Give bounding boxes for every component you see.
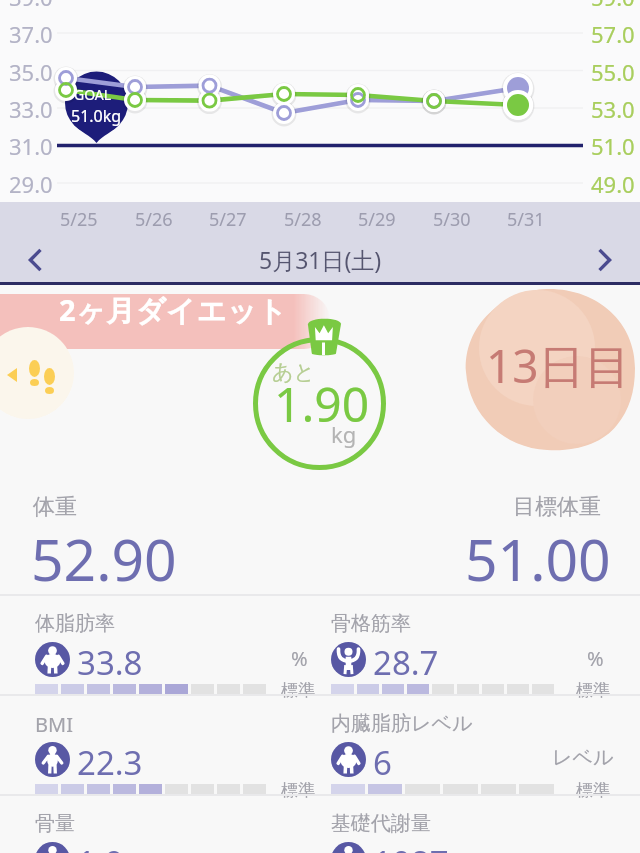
staticText: 基礎代謝量 — [331, 811, 431, 836]
button[interactable]: 基礎代謝量 — [296, 794, 616, 853]
staticText: 目標体重 — [513, 493, 601, 521]
staticText: 標準 — [576, 680, 610, 701]
staticText: 5/30 — [433, 207, 471, 232]
button[interactable]: 体脂肪率 — [0, 594, 320, 694]
staticText: 13日目 — [486, 334, 631, 397]
staticText: 標準 — [576, 780, 610, 801]
staticText: 5/31 — [507, 207, 545, 232]
staticText: 標準 — [281, 780, 315, 801]
staticText: 標準 — [281, 680, 315, 701]
staticText: 59.0 — [591, 0, 635, 12]
staticText: 37.0 — [9, 19, 53, 49]
button[interactable]: 骨量 — [0, 794, 320, 853]
staticText: 2ヶ月ダイエット — [59, 290, 288, 330]
staticText: 5/28 — [284, 207, 322, 232]
staticText: 57.0 — [591, 19, 635, 49]
staticText: 骨量 — [35, 811, 75, 836]
button[interactable]: 内臓脂肪レベル — [296, 694, 616, 794]
staticText: 6 — [373, 740, 392, 785]
staticText: 49.0 — [591, 169, 635, 199]
staticText: 33.8 — [77, 640, 143, 685]
button[interactable]: Previous day — [0, 237, 72, 282]
staticText: 35.0 — [9, 57, 53, 87]
staticText: 28.7 — [373, 640, 439, 685]
staticText: 5/25 — [60, 207, 98, 232]
staticText: 29.0 — [9, 169, 53, 199]
staticText: BMI — [35, 711, 73, 738]
staticText: あと — [272, 359, 315, 385]
staticText: % — [587, 645, 604, 672]
staticText: 5/29 — [358, 207, 396, 232]
staticText: 31.0 — [9, 131, 53, 161]
staticText: 53.0 — [591, 94, 635, 124]
staticText: 51.0kg — [71, 105, 122, 127]
staticText: 5月31日(土) — [259, 244, 382, 275]
staticText: 33.0 — [9, 94, 53, 124]
staticText: 体重 — [33, 493, 77, 521]
staticText: 22.3 — [77, 740, 143, 785]
button[interactable]: Next day — [568, 237, 640, 282]
staticText: 55.0 — [591, 57, 635, 87]
staticText: 1.90 — [274, 371, 370, 436]
staticText: 1087 — [373, 840, 449, 853]
staticText: 骨格筋率 — [331, 611, 411, 636]
staticText: 5/27 — [209, 207, 247, 232]
staticText: 51.0 — [591, 131, 635, 161]
staticText: レベル — [552, 745, 614, 770]
staticText: 52.90 — [31, 520, 177, 598]
staticText: GOAL — [74, 85, 112, 104]
staticText: kg — [331, 419, 357, 449]
staticText: 39.0 — [9, 0, 53, 12]
button[interactable]: 骨格筋率 — [296, 594, 616, 694]
staticText: 内臓脂肪レベル — [331, 711, 473, 736]
staticText: 体脂肪率 — [35, 611, 115, 636]
button[interactable]: BMI — [0, 694, 320, 794]
staticText: 5/26 — [135, 207, 173, 232]
staticText: 1.9 — [77, 840, 124, 853]
staticText: 51.00 — [465, 520, 611, 598]
staticText: % — [291, 645, 308, 672]
